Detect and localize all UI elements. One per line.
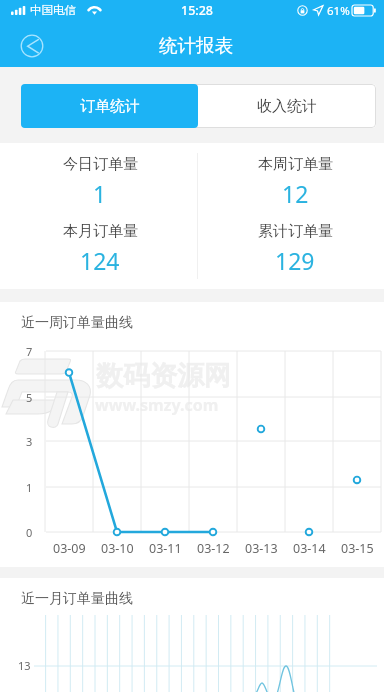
staticText: 近一月订单量曲线 — [21, 590, 133, 608]
staticText: 累计订单量 — [258, 222, 333, 241]
button[interactable]: 本周订单量 — [197, 145, 384, 218]
button[interactable]: 累计订单量 — [197, 212, 384, 285]
staticText: 本周订单量 — [258, 155, 333, 174]
staticText: 03-11 — [149, 540, 182, 557]
staticText: 03-10 — [101, 540, 134, 557]
staticText: 数码资源网 — [96, 359, 231, 393]
staticText: 订单统计 — [80, 97, 140, 116]
staticText: 本月订单量 — [63, 222, 138, 241]
button[interactable]: 收入统计 — [198, 84, 376, 128]
staticText: www.smzy.com — [95, 394, 219, 416]
staticText: 1 — [26, 480, 33, 495]
staticText: 1 — [93, 178, 107, 209]
button[interactable]: Back — [14, 28, 50, 64]
staticText: 129 — [275, 245, 315, 276]
staticText: 收入统计 — [257, 97, 317, 116]
staticText: 统计报表 — [159, 34, 233, 57]
button[interactable]: 本月订单量 — [2, 212, 198, 285]
staticText: 5 — [26, 390, 33, 405]
staticText: 15:28 — [181, 2, 214, 19]
staticText: 7 — [26, 344, 33, 359]
button[interactable]: 订单统计 — [21, 84, 198, 128]
staticText: 3 — [26, 434, 33, 449]
staticText: 13 — [18, 658, 31, 673]
staticText: 03-09 — [53, 540, 86, 557]
staticText: 03-12 — [197, 540, 230, 557]
staticText: 近一周订单量曲线 — [21, 314, 133, 332]
staticText: 0 — [26, 525, 33, 540]
button[interactable]: 今日订单量 — [2, 145, 198, 218]
staticText: 12 — [282, 178, 309, 209]
staticText: 今日订单量 — [63, 155, 138, 174]
staticText: 03-14 — [293, 540, 326, 557]
button[interactable] — [21, 84, 198, 128]
staticText: 124 — [80, 245, 120, 276]
staticText: 03-13 — [245, 540, 278, 557]
staticText: 61% — [327, 3, 350, 19]
staticText: 03-15 — [341, 540, 374, 557]
staticText: 中国电信 — [30, 3, 76, 17]
